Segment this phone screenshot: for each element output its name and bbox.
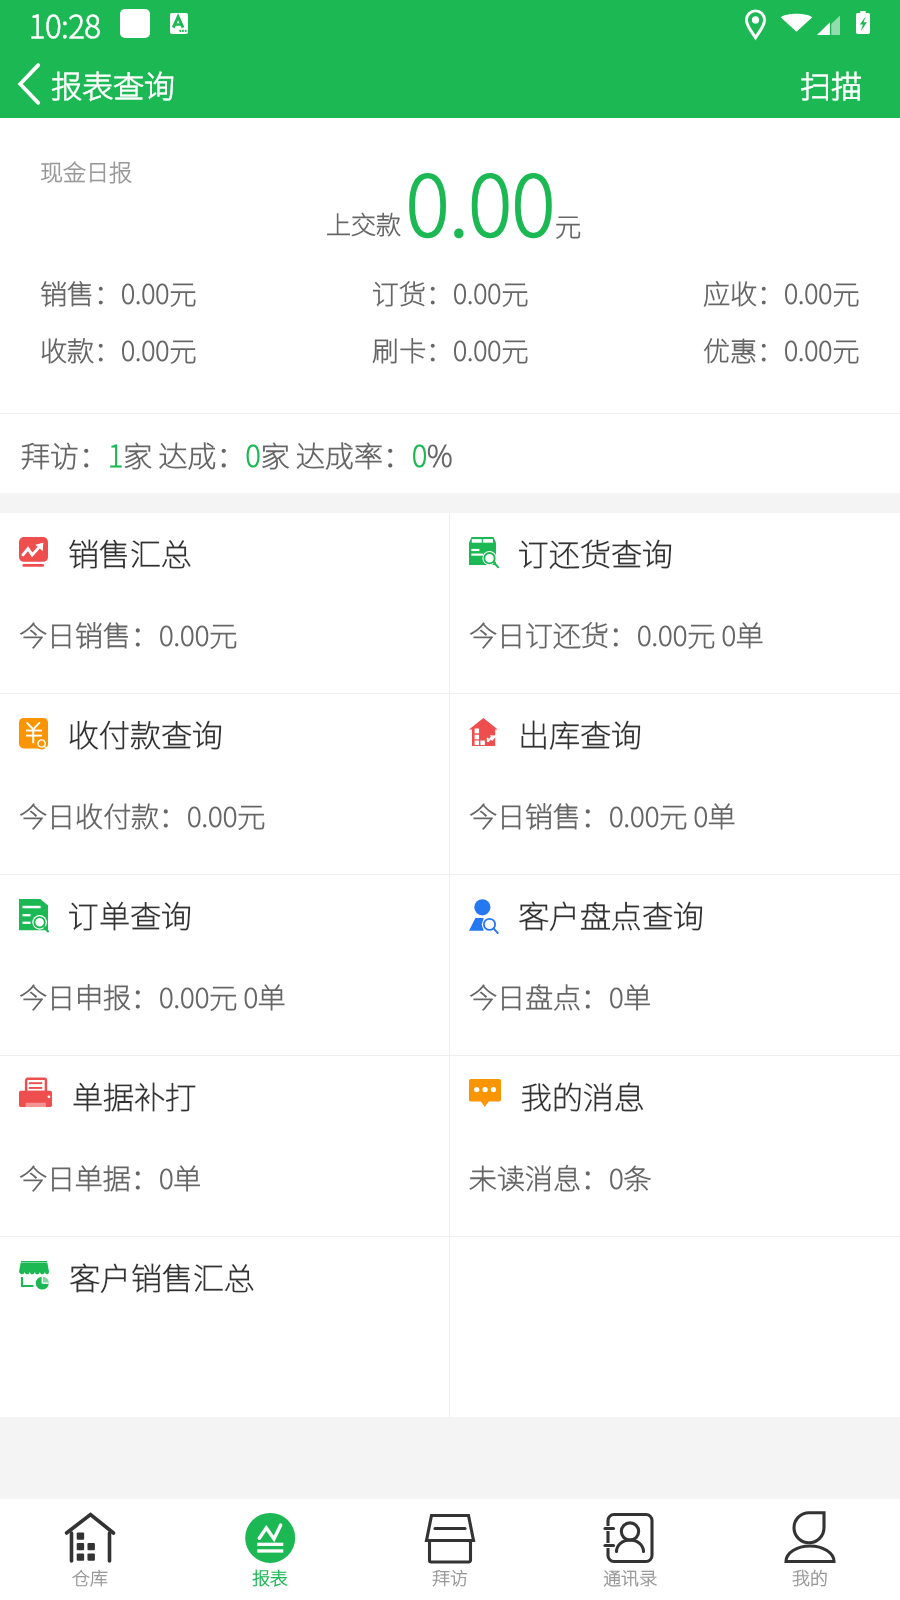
staticText: 订单查询 [68, 892, 192, 937]
staticText: 未读消息：0条 [469, 1157, 652, 1198]
staticText: 今日单据：0单 [19, 1157, 202, 1198]
button[interactable]: 单据补打 [0, 1056, 449, 1236]
staticText: 优惠：0.00元 [703, 330, 860, 369]
staticText: 现金日报 [40, 154, 132, 187]
button[interactable]: 扫描 [774, 50, 900, 118]
staticText: 上交款 [326, 205, 402, 241]
button[interactable]: 我的消息 [450, 1056, 900, 1236]
button[interactable]: 订单查询 [0, 875, 449, 1055]
button[interactable]: 客户盘点查询 [450, 875, 900, 1055]
staticText: 10:28 [29, 2, 101, 47]
staticText: 单据补打 [72, 1073, 196, 1118]
staticText: 订还货查询 [518, 530, 673, 575]
staticText: 今日销售：0.00元 [19, 614, 238, 655]
other: Location [745, 11, 766, 38]
staticText: 我的消息 [521, 1073, 645, 1118]
staticText: 订货：0.00元 [372, 273, 529, 312]
staticText: 今日订还货：0.00元 0单 [469, 614, 764, 655]
button[interactable]: 销售汇总 [0, 513, 449, 693]
staticText: 客户盘点查询 [518, 892, 704, 937]
button[interactable]: 通讯录 [540, 1499, 720, 1600]
staticText: 0.00 [406, 140, 555, 260]
button[interactable]: 订还货查询 [450, 513, 900, 693]
staticText: 应收：0.00元 [703, 273, 860, 312]
other: Battery [856, 10, 870, 36]
button[interactable]: 仓库 [0, 1499, 180, 1600]
other: Signal [817, 13, 840, 37]
staticText: 销售：0.00元 [40, 273, 197, 312]
staticText: 收付款查询 [68, 711, 223, 756]
staticText: 通讯录 [603, 1564, 657, 1590]
button[interactable]: 收付款查询 [0, 694, 449, 874]
staticText: 我的 [792, 1564, 828, 1590]
button[interactable]: 报表 [180, 1499, 360, 1600]
staticText: 仓库 [72, 1564, 108, 1590]
other: 返回 [18, 63, 40, 105]
staticText: 拜访：1家 达成：0家 达成率：0% [21, 433, 453, 475]
staticText: 出库查询 [518, 711, 642, 756]
staticText: 元 [555, 206, 582, 244]
staticText: 今日收付款：0.00元 [19, 795, 266, 836]
staticText: 今日申报：0.00元 0单 [19, 976, 286, 1017]
staticText: 拜访 [432, 1564, 468, 1590]
staticText: 报表查询 [51, 62, 175, 107]
staticText: 今日盘点：0单 [469, 976, 652, 1017]
staticText: 刷卡：0.00元 [372, 330, 529, 369]
staticText: 报表 [252, 1564, 288, 1590]
other: Wi-Fi [780, 10, 813, 36]
staticText: 今日销售：0.00元 0单 [469, 795, 736, 836]
staticText: 扫描 [800, 62, 862, 107]
button[interactable]: 出库查询 [450, 694, 900, 874]
staticText: 销售汇总 [68, 530, 192, 575]
button[interactable]: 我的 [720, 1499, 900, 1600]
staticText: 收款：0.00元 [40, 330, 197, 369]
button[interactable]: 返回 [0, 50, 191, 118]
button[interactable]: 客户销售汇总 [0, 1237, 449, 1417]
button[interactable]: 拜访 [360, 1499, 540, 1600]
staticText: 客户销售汇总 [69, 1254, 255, 1299]
